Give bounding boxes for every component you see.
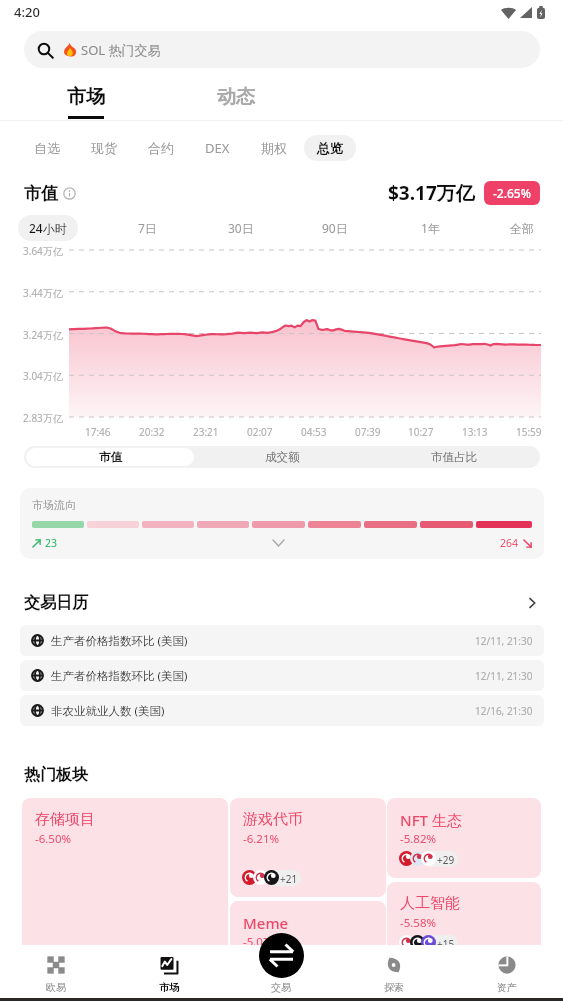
staticText: 市场流向 — [32, 498, 76, 512]
button[interactable]: SOL 热门交易 — [24, 31, 540, 68]
staticText: 13:13 — [462, 425, 488, 439]
staticText: 12/16, 21:30 — [475, 704, 533, 718]
staticText: 生产者价格指数环比 (美国) — [51, 633, 188, 649]
staticText: 交易日历 — [24, 593, 88, 613]
button[interactable]: 市值占比 — [368, 446, 540, 468]
staticText: 2.83万亿 — [23, 411, 63, 425]
button[interactable]: 市值 — [26, 448, 194, 466]
staticText: +29 — [437, 853, 455, 867]
button[interactable]: 1年 — [394, 212, 466, 244]
staticText: 人工智能 — [400, 894, 460, 913]
staticText: 欧易 — [46, 981, 66, 994]
staticText: 15:59 — [516, 425, 542, 439]
button[interactable]: 生产者价格指数环比 (美国) — [20, 625, 544, 656]
staticText: -5.58% — [400, 915, 437, 931]
staticText: 市值 — [24, 183, 58, 204]
button[interactable]: 自选 — [22, 129, 72, 167]
button[interactable]: 欧易 — [16, 945, 96, 1001]
button[interactable]: 非农业就业人数 (美国) — [20, 695, 544, 726]
staticText: 期权 — [261, 140, 287, 156]
button[interactable]: 动态 — [176, 76, 296, 121]
staticText: 非农业就业人数 (美国) — [51, 703, 165, 719]
button[interactable]: Meme — [230, 901, 386, 963]
button[interactable]: 全部 — [486, 212, 558, 244]
button[interactable]: DEX — [192, 129, 242, 167]
button[interactable]: 7日 — [111, 212, 183, 244]
staticText: 7日 — [138, 220, 157, 236]
staticText: 20:32 — [139, 425, 165, 439]
button[interactable]: NFT 生态 — [387, 798, 541, 878]
staticText: 合约 — [148, 140, 174, 156]
staticText: 07:39 — [355, 425, 381, 439]
button[interactable]: 市场 — [129, 945, 209, 1001]
staticText: 3.44万亿 — [23, 286, 63, 300]
staticText: 资产 — [497, 981, 517, 994]
staticText: -2.65% — [493, 185, 531, 201]
button[interactable]: 市场 — [26, 76, 146, 121]
staticText: 30日 — [228, 220, 254, 236]
staticText: 动态 — [217, 85, 255, 109]
staticText: $3.17万亿 — [388, 180, 475, 206]
staticText: 成交额 — [265, 450, 300, 464]
staticText: 生产者价格指数环比 (美国) — [51, 668, 188, 684]
button[interactable]: 期权 — [249, 129, 299, 167]
button[interactable]: 30日 — [205, 212, 277, 244]
staticText: 3.64万亿 — [23, 244, 63, 258]
staticText: -5.82% — [400, 831, 437, 847]
button[interactable]: 现货 — [79, 129, 129, 167]
staticText: 17:46 — [85, 425, 111, 439]
staticText: DEX — [205, 139, 230, 157]
button[interactable]: 交易 — [241, 945, 321, 995]
staticText: -6.21% — [243, 831, 280, 847]
staticText: 24小时 — [29, 220, 67, 236]
staticText: 12/11, 21:30 — [475, 669, 533, 683]
button[interactable]: 资产 — [467, 945, 547, 1001]
staticText: 10:27 — [408, 425, 434, 439]
button[interactable]: 合约 — [136, 129, 186, 167]
button[interactable]: 总览 — [304, 135, 356, 161]
staticText: 市场 — [159, 981, 179, 994]
staticText: 自选 — [34, 140, 60, 156]
staticText: 探索 — [384, 981, 404, 994]
staticText: 264 — [500, 536, 519, 550]
staticText: 02:07 — [247, 425, 273, 439]
staticText: 全部 — [510, 221, 534, 236]
staticText: +21 — [280, 872, 298, 886]
button[interactable]: 交易 — [259, 933, 304, 978]
staticText: -6.50% — [35, 831, 72, 847]
button[interactable]: 交易日历 — [24, 590, 539, 616]
staticText: 存储项目 — [35, 810, 95, 829]
button[interactable]: 探索 — [354, 945, 434, 1001]
staticText: 12/11, 21:30 — [475, 634, 533, 648]
staticText: 3.04万亿 — [23, 369, 63, 383]
button[interactable]: 成交额 — [196, 446, 368, 468]
staticText: 23:21 — [193, 425, 219, 439]
button[interactable]: 生产者价格指数环比 (美国) — [20, 660, 544, 691]
button[interactable]: 存储项目 — [22, 798, 228, 958]
staticText: NFT 生态 — [400, 810, 462, 830]
staticText: -5.07% — [243, 934, 280, 950]
staticText: 1年 — [421, 220, 440, 236]
staticText: 热门板块 — [24, 765, 88, 785]
staticText: 总览 — [317, 140, 343, 156]
staticText: 现货 — [91, 140, 117, 156]
staticText: Meme — [243, 913, 289, 933]
staticText: 3.24万亿 — [23, 328, 63, 342]
staticText: 市值占比 — [431, 450, 477, 464]
staticText: 23 — [45, 536, 58, 550]
button[interactable]: 人工智能 — [387, 882, 541, 962]
staticText: 90日 — [322, 220, 348, 236]
staticText: 04:53 — [301, 425, 327, 439]
button[interactable]: 游戏代币 — [230, 798, 386, 897]
button[interactable]: 24小时 — [12, 212, 84, 244]
staticText: 游戏代币 — [243, 810, 303, 829]
staticText: 市场 — [67, 85, 105, 109]
staticText: 交易 — [271, 981, 291, 994]
staticText: 市值 — [99, 450, 122, 464]
staticText: 4:20 — [14, 3, 40, 21]
button[interactable]: 90日 — [299, 212, 371, 244]
staticText: +15 — [437, 937, 455, 951]
staticText: SOL 热门交易 — [81, 41, 161, 59]
